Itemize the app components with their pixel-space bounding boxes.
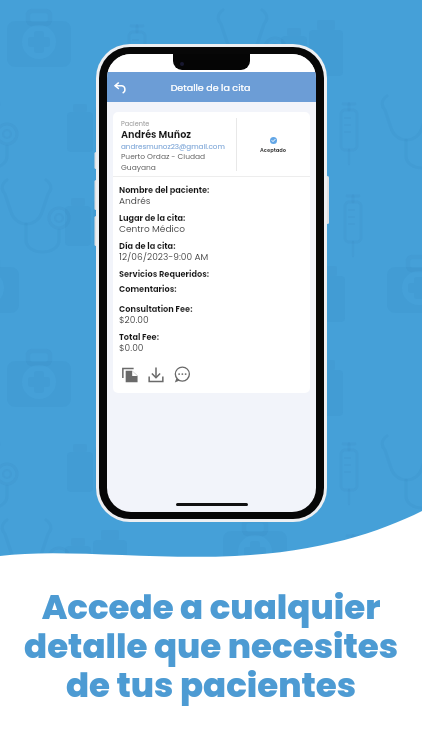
button[interactable]: Download <box>145 364 167 386</box>
staticText: Andrés <box>119 195 151 208</box>
staticText: Detalle de la cita <box>135 81 286 94</box>
staticText: $0.00 <box>119 342 144 355</box>
staticText: Andrés Muñoz <box>121 128 192 141</box>
staticText: Servicios Requeridos: <box>119 268 210 279</box>
staticText: Paciente <box>121 119 150 128</box>
staticText: 12/06/2023-9:00 AM <box>119 251 209 264</box>
staticText: Comentarios: <box>119 283 177 294</box>
staticText: Lugar de la cita: <box>119 212 186 223</box>
staticText: Accede a cualquier detalle que necesites… <box>24 583 398 709</box>
staticText: $20.00 <box>119 314 149 327</box>
button[interactable]: Copy <box>119 364 141 386</box>
staticText: Centro Médico <box>119 223 185 236</box>
staticText: Consultation Fee: <box>119 303 193 314</box>
staticText: andresmunoz23@gmail.com <box>121 141 225 151</box>
staticText: Nombre del paciente: <box>119 184 210 195</box>
staticText: Total Fee: <box>119 331 159 342</box>
staticText: Puerto Ordaz - Ciudad Guayana <box>121 151 206 172</box>
staticText: Aceptado <box>260 147 287 154</box>
button[interactable]: Back <box>107 73 134 101</box>
staticText: Día de la cita: <box>119 240 176 251</box>
button[interactable]: Comments <box>171 364 193 386</box>
